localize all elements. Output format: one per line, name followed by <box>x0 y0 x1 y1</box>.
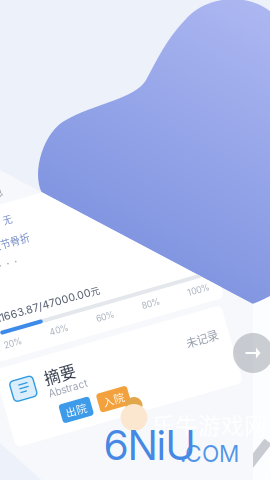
staticText: 剩余 <box>183 297 201 310</box>
staticText: 剩余 35336.13 元 <box>103 246 185 262</box>
staticText: 20% <box>0 346 6 356</box>
staticText: 乐牛游戏网 <box>152 408 267 441</box>
staticText: 无 <box>0 225 9 239</box>
staticText: 入院 <box>90 423 112 439</box>
staticText: 摘要 <box>40 380 72 403</box>
staticText: 出院 <box>51 423 73 439</box>
staticText: 6NiU <box>104 420 195 470</box>
staticText: Abstract <box>40 402 80 414</box>
staticText: 未记录 <box>186 389 219 405</box>
staticText: .COM <box>180 440 239 467</box>
staticText: 11663.87/47000.00 <box>0 317 85 330</box>
button[interactable]: Next <box>233 333 270 373</box>
staticText: 髋关节骨折 <box>0 247 21 262</box>
staticText: 住院信息 <box>0 198 2 212</box>
staticText: 40% <box>34 346 54 356</box>
staticText: 100% <box>178 346 201 356</box>
